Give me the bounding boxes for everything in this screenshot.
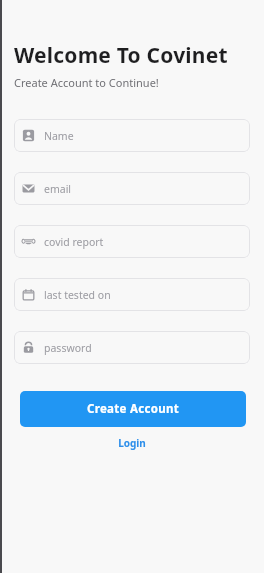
staticText: last tested on (44, 288, 111, 302)
other: Name (22, 129, 35, 142)
button[interactable]: Create Account (20, 391, 246, 427)
other: last tested on (22, 288, 35, 301)
staticText: password (44, 341, 92, 355)
staticText: covid report (44, 235, 104, 249)
button[interactable]: Login (0, 433, 264, 453)
button[interactable]: Name (14, 119, 250, 152)
staticText: Create Account (87, 401, 180, 417)
button[interactable]: last tested on (14, 278, 250, 311)
staticText: email (44, 182, 72, 196)
button[interactable]: covid report (14, 225, 250, 258)
staticText: Welcome To Covinet (14, 41, 228, 70)
other: covid report (22, 235, 35, 248)
staticText: Name (44, 129, 74, 143)
staticText: Create Account to Continue! (14, 75, 159, 90)
other: email (22, 182, 35, 195)
staticText: Login (118, 436, 146, 450)
button[interactable]: password (14, 331, 250, 364)
other: password (22, 341, 35, 354)
button[interactable]: email (14, 172, 250, 205)
